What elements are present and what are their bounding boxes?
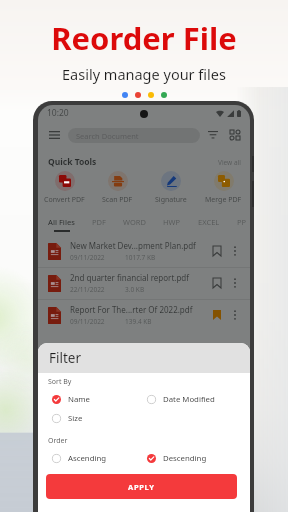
- button[interactable]: Grid view: [228, 128, 242, 142]
- button[interactable]: Ascending: [52, 452, 107, 464]
- button[interactable]: Name: [52, 393, 90, 405]
- button[interactable]: More options: [229, 245, 241, 257]
- staticText: 22/11/2022: [70, 285, 105, 294]
- button[interactable]: View all: [218, 158, 250, 167]
- staticText: 139.4 KB: [125, 317, 152, 326]
- button[interactable]: WORD: [121, 217, 148, 230]
- button[interactable]: APPLY: [46, 474, 237, 499]
- staticText: Date Modified: [163, 394, 215, 405]
- button[interactable]: Size: [52, 412, 83, 424]
- button[interactable]: Signature: [144, 171, 197, 205]
- button[interactable]: Bookmark: [209, 307, 225, 323]
- staticText: PDF: [92, 217, 106, 227]
- button[interactable]: HWP: [161, 217, 183, 230]
- staticText: 3.0 KB: [125, 285, 145, 294]
- button[interactable]: Descending: [147, 452, 207, 464]
- button[interactable]: PDF: [90, 217, 108, 230]
- staticText: 10:20: [47, 107, 69, 119]
- staticText: Name: [68, 394, 90, 405]
- button[interactable]: EXCEL: [196, 217, 222, 230]
- staticText: Size: [68, 413, 83, 424]
- button[interactable]: Scan PDF: [91, 171, 144, 205]
- button[interactable]: Bookmark: [209, 275, 225, 291]
- button[interactable]: More options: [229, 309, 241, 321]
- staticText: Reorder File: [51, 17, 237, 59]
- staticText: HWP: [163, 217, 181, 227]
- staticText: Sort By: [48, 377, 72, 387]
- staticText: Scan PDF: [102, 195, 133, 205]
- staticText: View all: [218, 158, 241, 167]
- staticText: Signature: [155, 195, 187, 205]
- staticText: Easily manage your files: [62, 64, 226, 84]
- button[interactable]: New Market Dev...pment Plan.pdf: [38, 235, 250, 267]
- button[interactable]: Menu: [46, 127, 62, 143]
- staticText: 2nd quarter financial report.pdf: [70, 272, 190, 283]
- button[interactable]: Merge PDF: [197, 171, 250, 205]
- staticText: Filter: [49, 349, 82, 367]
- button[interactable]: 2nd quarter financial report.pdf: [38, 267, 250, 299]
- staticText: EXCEL: [198, 217, 220, 227]
- staticText: All Files: [48, 217, 75, 227]
- staticText: Quick Tools: [48, 156, 97, 168]
- button[interactable]: Date Modified: [147, 393, 215, 405]
- button[interactable]: PP: [235, 217, 249, 230]
- button[interactable]: More options: [229, 277, 241, 289]
- staticText: Report For The...rter Of 2022.pdf: [70, 304, 193, 315]
- staticText: Order: [48, 436, 68, 446]
- staticText: WORD: [123, 217, 146, 227]
- button[interactable]: All Files: [46, 217, 77, 232]
- staticText: 09/11/2022: [70, 317, 105, 326]
- staticText: 09/11/2022: [70, 253, 105, 262]
- staticText: Convert PDF: [44, 195, 85, 205]
- button[interactable]: Search Document: [68, 128, 200, 143]
- button[interactable]: Convert PDF: [38, 171, 91, 205]
- staticText: Ascending: [68, 453, 107, 464]
- button[interactable]: Filter: [206, 128, 220, 142]
- staticText: 1017.7 KB: [125, 253, 156, 262]
- staticText: PP: [237, 217, 247, 227]
- button[interactable]: Report For The...rter Of 2022.pdf: [38, 299, 250, 331]
- staticText: APPLY: [128, 482, 155, 492]
- button[interactable]: Bookmark: [209, 243, 225, 259]
- staticText: New Market Dev...pment Plan.pdf: [70, 240, 196, 251]
- staticText: Descending: [163, 453, 207, 464]
- staticText: Merge PDF: [205, 195, 242, 205]
- staticText: Search Document: [76, 131, 139, 141]
